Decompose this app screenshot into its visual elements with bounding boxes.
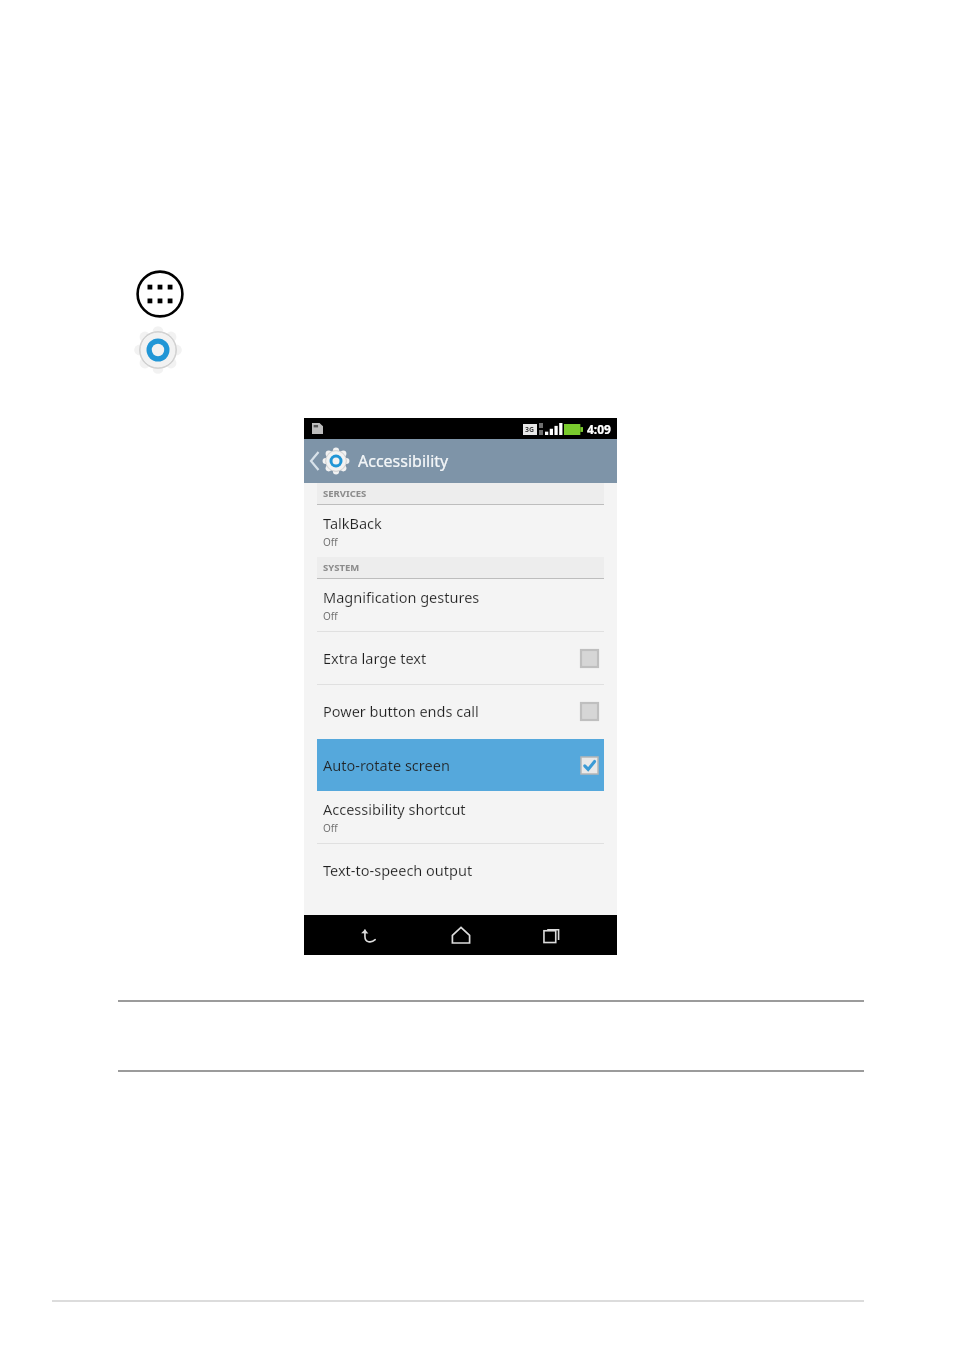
button[interactable]: Text-to-speech output [304, 844, 617, 896]
staticText: Power button ends call [323, 701, 581, 721]
button[interactable]: Accessibility shortcut [304, 791, 617, 843]
other: Checkbox [581, 757, 598, 774]
other: Checkbox [581, 650, 598, 667]
button[interactable]: Power button ends call [304, 685, 617, 737]
button[interactable]: Home [434, 915, 488, 955]
button[interactable]: Accessibility [304, 439, 617, 483]
staticText: TalkBack [323, 513, 382, 533]
button[interactable]: Back [342, 915, 396, 955]
staticText: 3G [525, 425, 535, 435]
staticText: Off [323, 821, 338, 835]
other: Checkbox [581, 703, 598, 720]
staticText: Extra large text [323, 648, 581, 668]
button[interactable]: Extra large text [304, 632, 617, 684]
button[interactable]: TalkBack [304, 505, 617, 557]
staticText: Off [323, 609, 338, 623]
staticText: Auto-rotate screen [323, 755, 581, 775]
staticText: 4:09 [587, 421, 611, 437]
button[interactable]: Auto-rotate screen [317, 739, 604, 791]
staticText: Magnification gestures [323, 587, 480, 607]
staticText: Accessibility shortcut [323, 799, 466, 819]
staticText: SERVICES [323, 487, 367, 500]
staticText: SYSTEM [323, 561, 360, 574]
staticText: Off [323, 535, 338, 549]
staticText: Text-to-speech output [323, 860, 473, 880]
staticText: Accessibility [358, 450, 449, 472]
button[interactable]: Recent apps [525, 915, 579, 955]
button[interactable]: Magnification gestures [304, 579, 617, 631]
button[interactable]: All apps [136, 270, 184, 318]
